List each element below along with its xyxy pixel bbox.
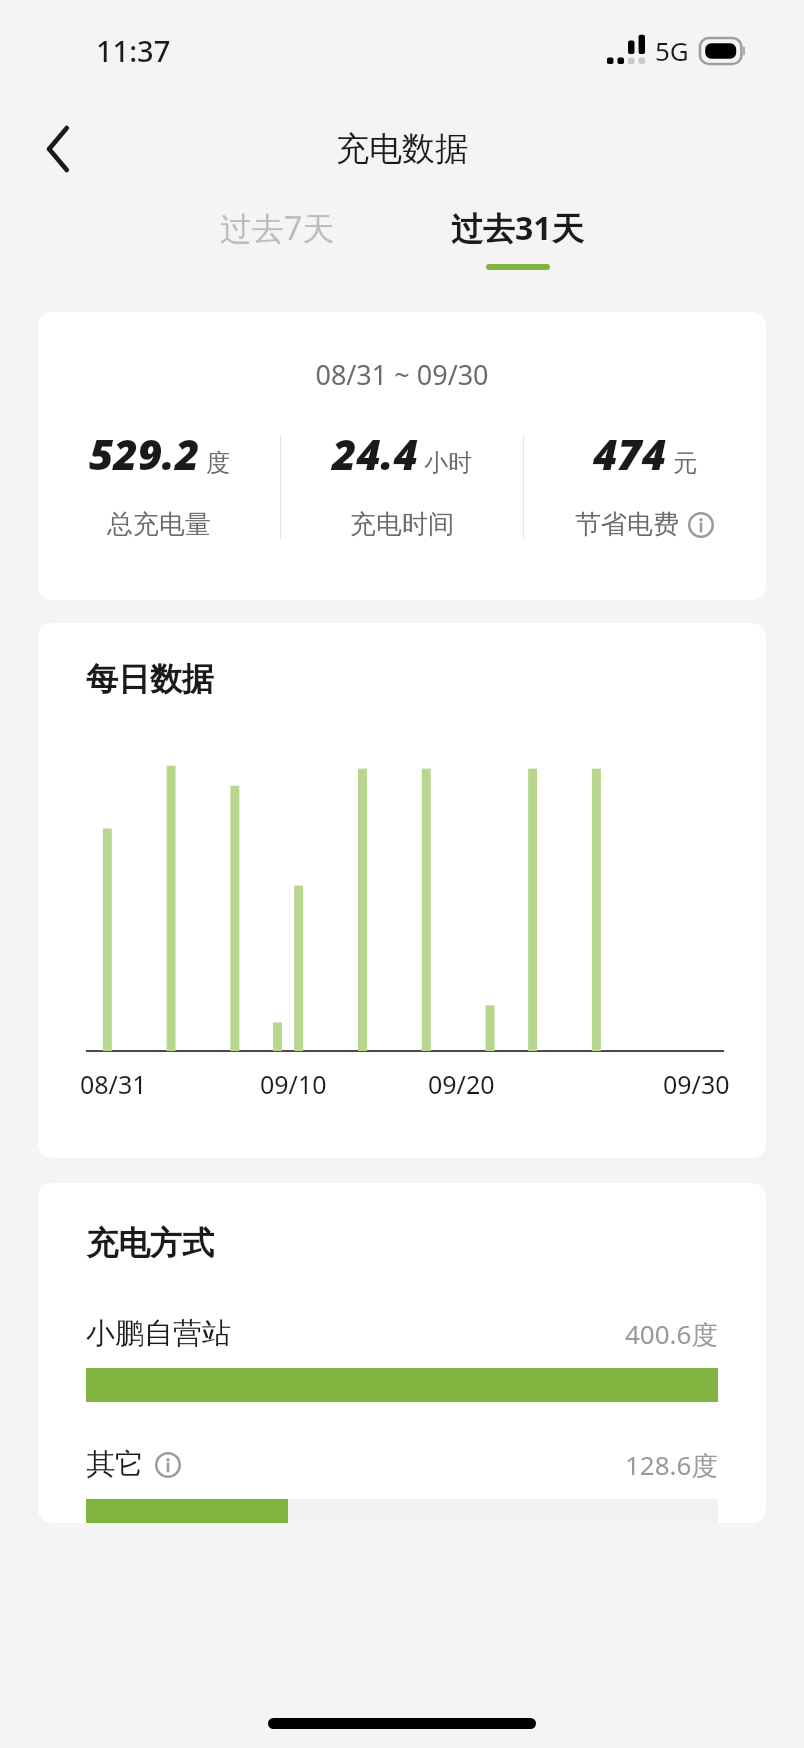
staticText: 24.4 — [332, 425, 418, 482]
staticText: 充电时间 — [350, 508, 454, 541]
staticText: 5G — [655, 33, 689, 68]
staticText: 元 — [673, 448, 697, 478]
other: Other charging info — [154, 1451, 182, 1479]
staticText: 总充电量 — [107, 508, 211, 541]
staticText: 09/20 — [428, 1067, 495, 1101]
staticText: 09/30 — [663, 1067, 730, 1101]
staticText: 过去7天 — [220, 206, 335, 250]
staticText: 每日数据 — [86, 659, 214, 699]
staticText: 09/10 — [260, 1067, 327, 1101]
button[interactable]: 其它 — [86, 1446, 718, 1523]
button[interactable]: 过去31天 — [441, 198, 594, 278]
staticText: 128.6度 — [625, 1447, 718, 1483]
button[interactable]: 小鹏自营站 — [86, 1315, 718, 1402]
staticText: 11:37 — [96, 31, 171, 70]
staticText: 充电方式 — [86, 1223, 214, 1263]
staticText: 其它 — [86, 1446, 144, 1483]
button[interactable]: Back — [28, 118, 90, 180]
staticText: 过去31天 — [451, 206, 584, 250]
staticText: 节省电费 — [575, 508, 679, 541]
staticText: 充电数据 — [336, 128, 468, 170]
staticText: 小时 — [424, 448, 472, 478]
staticText: 小鹏自营站 — [86, 1315, 231, 1352]
staticText: 度 — [206, 448, 230, 478]
staticText: 529.2 — [89, 425, 200, 482]
staticText: 08/31 ~ 09/30 — [38, 356, 766, 393]
staticText: 08/31 — [80, 1067, 147, 1101]
button[interactable]: Saved electricity fee info — [687, 511, 715, 539]
staticText: 400.6度 — [625, 1316, 718, 1352]
staticText: 474 — [593, 425, 667, 482]
button[interactable]: 过去7天 — [210, 198, 345, 278]
